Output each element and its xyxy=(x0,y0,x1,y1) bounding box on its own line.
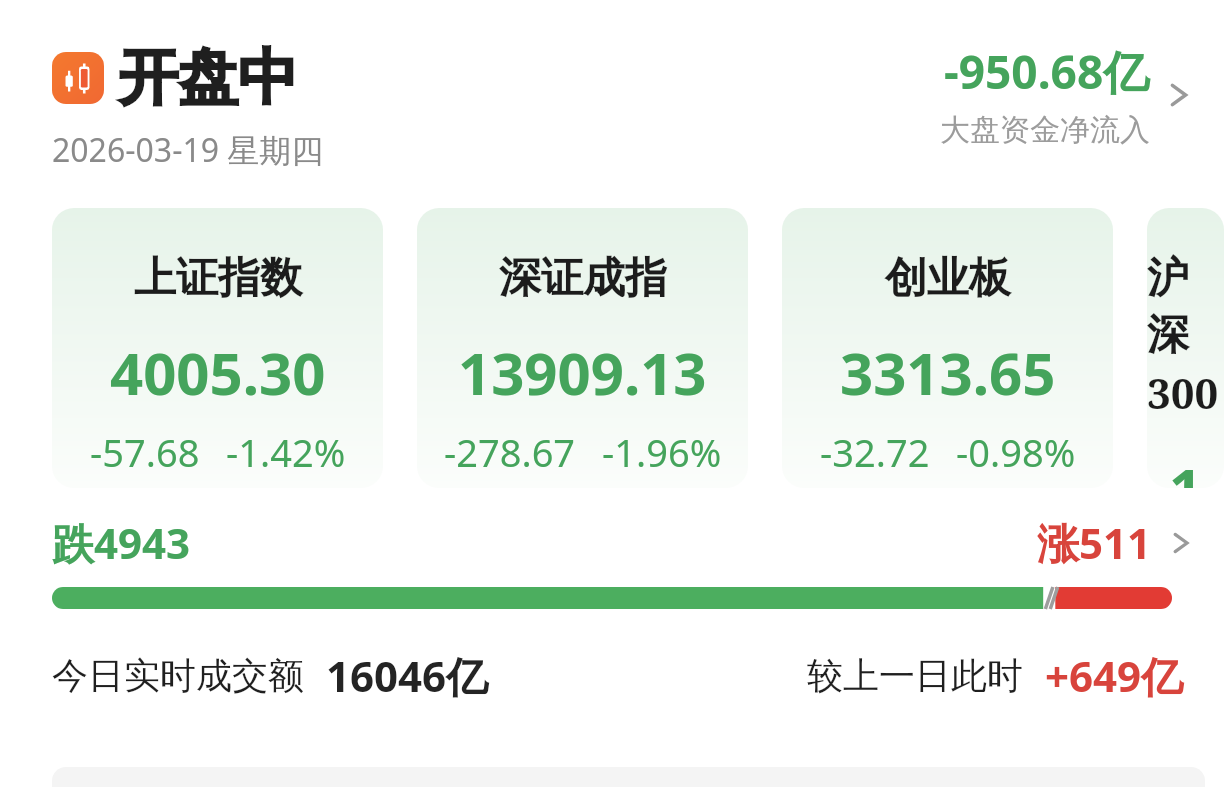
button[interactable]: 创业板 xyxy=(782,208,1113,488)
staticText: -278.67 xyxy=(444,426,576,478)
button[interactable]: 跌4943 xyxy=(52,514,1200,571)
staticText: 16046亿 xyxy=(326,647,489,704)
staticText: 4005.30 xyxy=(110,333,326,412)
other: 市场状态 xyxy=(52,52,104,104)
button[interactable]: -950.68亿 xyxy=(940,40,1200,149)
staticText: +649亿 xyxy=(1045,647,1184,704)
staticText: 2026-03-19 星期四 xyxy=(52,128,324,172)
staticText: 沪深300 xyxy=(1147,252,1224,421)
staticText: 今日实时成交额 xyxy=(52,653,304,698)
staticText: 1 xyxy=(1169,449,1203,488)
staticText: 大盘资金净流入 xyxy=(940,111,1150,149)
staticText: -32.72 xyxy=(820,426,930,478)
staticText: -0.98% xyxy=(956,426,1076,478)
staticText: 上证指数 xyxy=(134,252,302,305)
staticText: -950.68亿 xyxy=(944,40,1150,103)
button[interactable]: 上证指数 xyxy=(52,208,383,488)
other: 大盘资金净流入详情 xyxy=(1160,75,1200,115)
staticText: -1.96% xyxy=(602,426,722,478)
staticText: 涨511 xyxy=(1037,514,1152,571)
staticText: 3313.65 xyxy=(840,333,1056,412)
button[interactable]: 沪深300 xyxy=(1147,208,1224,488)
staticText: -57.68 xyxy=(90,426,200,478)
button[interactable]: 深证成指 xyxy=(417,208,748,488)
staticText: 开盘中 xyxy=(118,40,298,116)
staticText: 较上一日此时 xyxy=(807,653,1023,698)
staticText: 创业板 xyxy=(885,252,1011,305)
staticText: 深证成指 xyxy=(499,252,667,305)
staticText: 13909.13 xyxy=(458,333,707,412)
staticText: 跌4943 xyxy=(52,514,191,571)
staticText: -1.42% xyxy=(226,426,346,478)
